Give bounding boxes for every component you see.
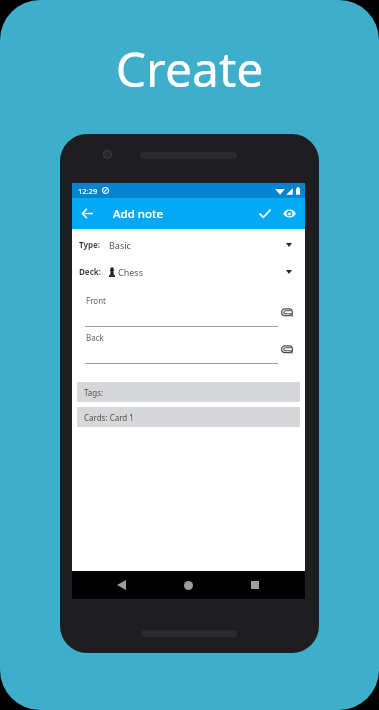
- button[interactable]: Back: [103, 571, 139, 599]
- staticText: Back: [86, 332, 104, 343]
- staticText: Chess: [118, 266, 143, 278]
- staticText: Front: [86, 295, 106, 306]
- staticText: Create: [0, 36, 379, 101]
- staticText: Add note: [113, 206, 164, 222]
- staticText: Type:: [79, 239, 101, 250]
- staticText: 12:29: [78, 186, 98, 196]
- button[interactable]: Cards: Card 1: [77, 407, 300, 427]
- staticText: Deck:: [79, 266, 101, 277]
- button[interactable]: Deck:: [72, 258, 305, 285]
- button[interactable]: Type:: [72, 231, 305, 258]
- button[interactable]: Tags:: [77, 382, 300, 402]
- button[interactable]: Navigate up: [72, 198, 102, 229]
- staticText: Basic: [109, 239, 131, 251]
- button[interactable]: Home: [170, 571, 206, 599]
- staticText: Cards: Card 1: [84, 412, 134, 423]
- button[interactable]: Save: [244, 198, 274, 229]
- button[interactable]: Front: [72, 294, 305, 331]
- button[interactable]: Back: [72, 331, 305, 368]
- button[interactable]: Recent apps: [237, 571, 273, 599]
- button[interactable]: Preview: [274, 198, 304, 229]
- staticText: Tags:: [84, 387, 104, 398]
